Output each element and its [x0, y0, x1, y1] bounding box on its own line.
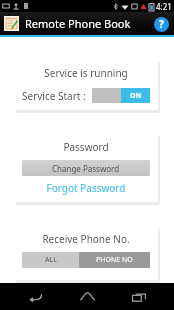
button[interactable]: Help [152, 15, 170, 33]
button[interactable]: Recent apps [122, 283, 156, 310]
staticText: PHONE NO [96, 255, 133, 265]
button[interactable]: Forgot Password [22, 181, 150, 195]
staticText: Remote Phone Book [25, 16, 131, 31]
button[interactable]: Change Password [22, 160, 150, 176]
staticText: Receive Phone No. [22, 232, 150, 246]
staticText: ALL [45, 255, 57, 265]
button[interactable]: Back [18, 283, 52, 310]
staticText: Service is running [22, 66, 150, 80]
button[interactable]: PHONE NO [79, 252, 150, 268]
staticText: ? [159, 17, 164, 31]
button[interactable]: Service toggle, on [92, 88, 150, 103]
button[interactable]: ALL [22, 252, 79, 268]
staticText: Password [22, 140, 150, 154]
staticText: Change Password [52, 163, 120, 174]
staticText: 4:21 [156, 1, 172, 12]
button[interactable]: Home [70, 283, 104, 310]
staticText: Service Start : [22, 89, 86, 103]
staticText: ON [130, 91, 142, 101]
